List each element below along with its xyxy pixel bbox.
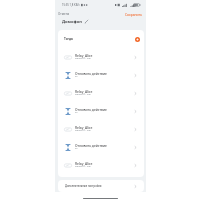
staticText: Тогда <box>64 37 73 41</box>
other: Переименовать <box>84 19 89 24</box>
button[interactable]: Дополнительные настройки <box>58 180 144 192</box>
staticText: 15:35 1,8 KB/c <box>62 3 80 7</box>
staticText: 5c <box>75 146 78 149</box>
button[interactable]: Отложить действие <box>58 102 144 120</box>
staticText: 5c <box>75 110 78 113</box>
staticText: Device 2 : Off <box>75 128 91 131</box>
staticText: 5c <box>75 74 78 77</box>
staticText: Отложить действие <box>75 143 107 147</box>
staticText: Device 2 : Off <box>75 164 91 167</box>
staticText: Дополнительные настройки <box>65 184 102 188</box>
staticText: Relay_Alice <box>75 89 93 93</box>
staticText: Relay_Alice <box>75 53 93 57</box>
button[interactable]: Добавить <box>135 37 140 42</box>
button[interactable]: Отложить действие <box>58 66 144 84</box>
button[interactable]: Отмена <box>57 11 71 17</box>
button[interactable]: Relay_Alice <box>58 120 144 138</box>
button[interactable]: Сохранить <box>124 11 143 17</box>
button[interactable]: Relay_Alice <box>58 156 144 174</box>
button[interactable]: Relay_Alice <box>58 84 144 102</box>
staticText: Relay_Alice <box>75 125 93 129</box>
staticText: Домофон <box>62 19 82 24</box>
staticText: Отложить действие <box>75 71 107 75</box>
staticText: Relay_Alice <box>75 161 93 165</box>
button[interactable]: Отложить действие <box>58 138 144 156</box>
staticText: Сохранить <box>125 12 142 16</box>
staticText: Отложить действие <box>75 107 107 111</box>
staticText: Отмена <box>58 12 70 16</box>
button[interactable]: Relay_Alice <box>58 48 144 66</box>
staticText: Device 2 : Off <box>75 56 91 59</box>
staticText: Device 2 : Off <box>75 92 91 95</box>
